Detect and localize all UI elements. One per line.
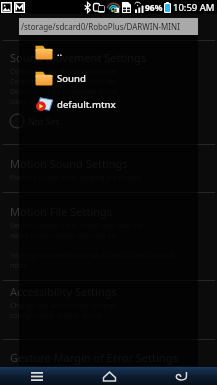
button[interactable]: Back <box>145 367 217 385</box>
staticText: name of the motion from the list <box>10 231 118 241</box>
button[interactable]: Motion File Settings <box>0 204 217 271</box>
button[interactable]: default.mtnx <box>19 91 198 117</box>
staticText: default.mtnx <box>57 98 116 111</box>
button[interactable]: Accessibility Settings <box>0 284 217 321</box>
staticText: Connect to the RoboPlus service <box>10 67 116 77</box>
button[interactable]: Home <box>73 367 145 385</box>
staticText: Motion File Settings <box>10 204 113 219</box>
staticText: Set the margin of error of gesture <box>10 367 121 377</box>
staticText: mtnx <box>10 261 28 271</box>
staticText: Connect the device and start the <box>10 77 117 87</box>
button[interactable]: Recent apps <box>0 367 73 385</box>
staticText: /storage/sdcard0/RoboPlus/DARWIN-MINI <box>21 21 180 32</box>
staticText: Accessibility Settings <box>10 284 117 299</box>
staticText: Sound Movement Settings <box>10 50 147 65</box>
staticText: 96% <box>145 2 163 14</box>
staticText: Gesture Margin of Error Settings <box>10 350 178 365</box>
staticText: .. <box>57 46 63 59</box>
staticText: Not Set <box>28 115 60 127</box>
button[interactable]: Not Set <box>9 113 60 129</box>
button[interactable]: .. <box>19 39 198 65</box>
button[interactable]: Gesture Margin of Error Settings <box>0 350 217 377</box>
staticText: Play the sound when playing the motion <box>10 173 143 183</box>
staticText: Sound <box>57 72 86 85</box>
staticText: configuration of your device <box>10 311 103 321</box>
button[interactable]: Motion Sound Settings <box>0 156 217 183</box>
staticText: 10:59 AM <box>173 1 215 14</box>
staticText: Change the Accessibility Settings <box>10 301 118 311</box>
staticText: Device must be connected to the <box>10 87 118 97</box>
staticText: Set the motion file to select and save t… <box>10 221 144 231</box>
staticText: Motion Sound Settings <box>10 156 128 171</box>
button[interactable]: Sound <box>19 65 198 91</box>
staticText: client program <box>10 97 59 107</box>
